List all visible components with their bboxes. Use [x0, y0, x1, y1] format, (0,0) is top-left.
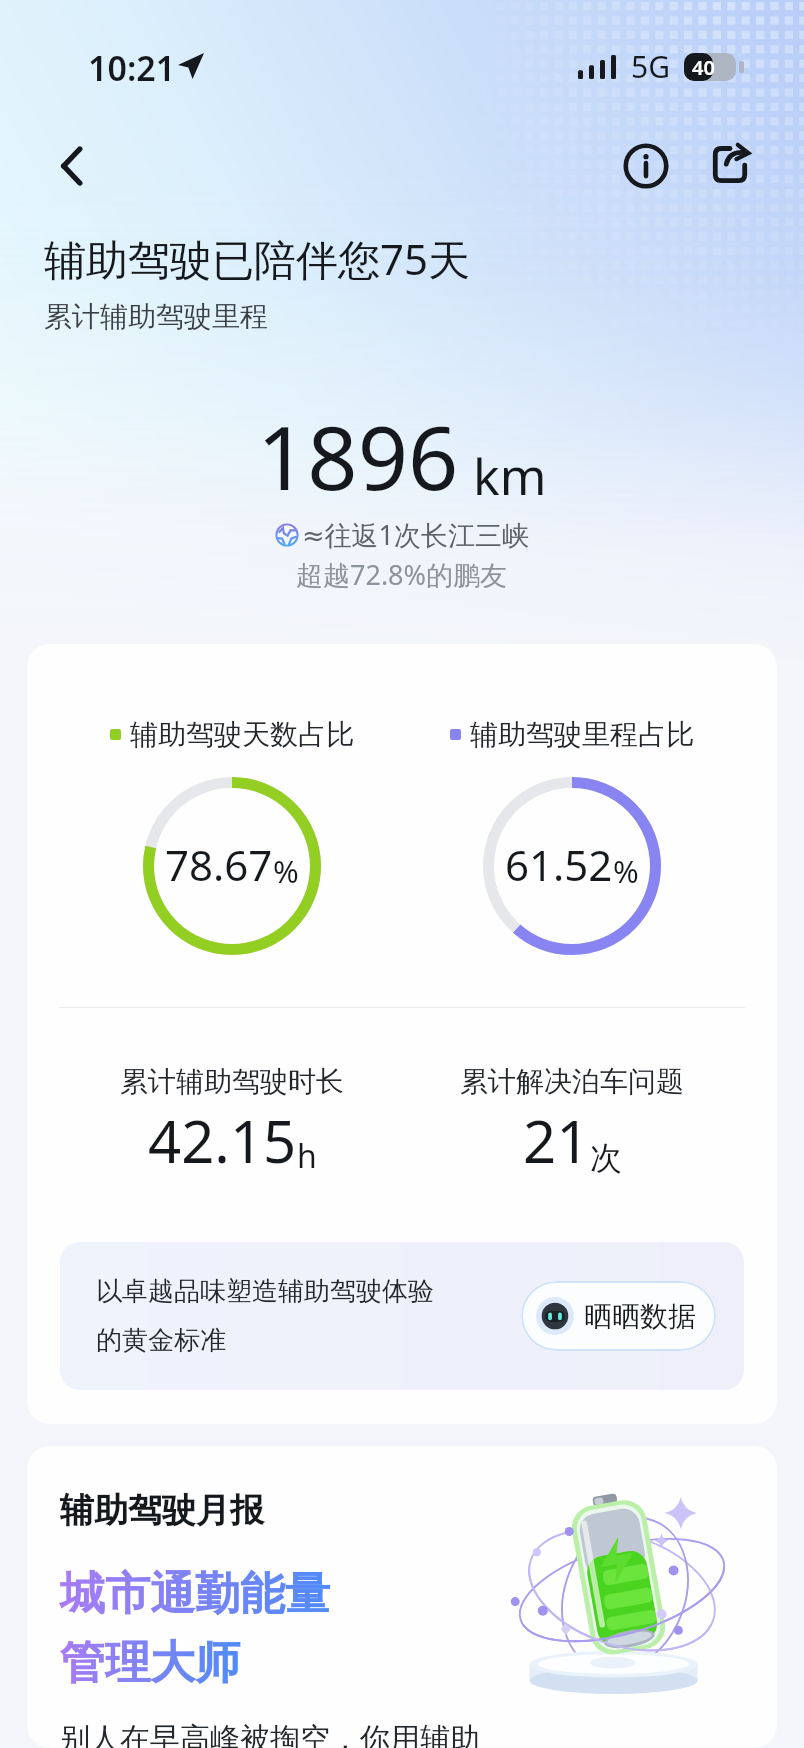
staticText: 辅助驾驶里程占比: [470, 717, 694, 752]
staticText: 5G: [631, 46, 670, 87]
button[interactable]: 辅助驾驶月报: [27, 1446, 777, 1748]
staticText: 累计解决泊车问题: [460, 1064, 684, 1099]
staticText: 78.67: [165, 836, 273, 893]
staticText: 城市通勤能量: [60, 1566, 330, 1623]
staticText: ≈往返1次长江三峡: [302, 516, 530, 553]
button[interactable]: Back: [44, 138, 100, 194]
staticText: 管理大师: [60, 1635, 240, 1692]
staticText: 辅助驾驶天数占比: [130, 717, 354, 752]
staticText: 40: [692, 54, 715, 81]
staticText: 累计辅助驾驶里程: [44, 299, 268, 334]
staticText: 1896: [257, 396, 459, 516]
staticText: 42.15: [148, 1101, 297, 1180]
staticText: 辅助驾驶已陪伴您75天: [44, 230, 471, 287]
staticText: 别人在早高峰被掏空，你用辅助: [60, 1720, 480, 1748]
button[interactable]: Share: [700, 136, 760, 196]
staticText: km: [473, 442, 547, 510]
staticText: h: [297, 1134, 317, 1178]
staticText: 累计辅助驾驶时长: [120, 1064, 344, 1099]
staticText: 晒晒数据: [584, 1299, 696, 1334]
staticText: 的黄金标准: [96, 1324, 226, 1357]
staticText: 次: [590, 1138, 622, 1178]
staticText: 21: [523, 1101, 590, 1180]
button[interactable]: 晒晒数据: [521, 1281, 716, 1351]
staticText: 以卓越品味塑造辅助驾驶体验: [96, 1275, 434, 1308]
button[interactable]: Info: [616, 136, 676, 196]
staticText: %: [273, 850, 299, 892]
staticText: 10:21: [88, 45, 176, 91]
staticText: 辅助驾驶月报: [60, 1489, 264, 1532]
staticText: 61.52: [505, 836, 613, 893]
staticText: %: [613, 850, 639, 892]
staticText: 超越72.8%的鹏友: [296, 556, 508, 593]
